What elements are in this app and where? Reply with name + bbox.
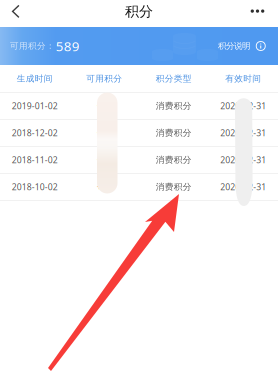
staticText: 消费积分 [156,154,192,165]
button[interactable]: 2018-10-02 [0,174,278,201]
staticText: +50 [97,181,112,193]
staticText: 消费积分 [156,127,192,138]
staticText: 消费积分 [156,181,192,192]
staticText: 2019-01-02 [12,100,58,112]
staticText: 生成时间 [17,73,53,84]
button[interactable]: 积分 [109,0,169,27]
staticText: 2018-10-02 [12,181,58,193]
staticText: 积分说明 [218,41,250,51]
staticText: 消费积分 [156,100,192,111]
staticText: 2020-12-31 [220,127,266,139]
staticText: 可用积分 [86,73,122,84]
staticText: +50 [97,127,112,139]
button[interactable]: More options [238,0,272,27]
button[interactable]: 2018-12-02 [0,120,278,147]
staticText: +50 [97,154,112,166]
button[interactable]: 2018-11-02 [0,147,278,174]
staticText: 589 [56,37,80,55]
staticText: 积分 [125,3,153,20]
button[interactable]: Back [0,0,32,27]
staticText: 2018-11-02 [12,154,58,166]
staticText: 2020-12-31 [220,181,266,193]
button[interactable]: 积分说明 [220,36,268,56]
staticText: 有效时间 [225,73,261,84]
staticText: 2020-12-31 [220,154,266,166]
staticText: 可用积分： [10,41,55,51]
staticText: 2020-12-31 [220,100,266,112]
button[interactable]: 2019-01-02 [0,93,278,120]
staticText: 积分类型 [156,73,192,84]
staticText: 2018-12-02 [12,127,58,139]
